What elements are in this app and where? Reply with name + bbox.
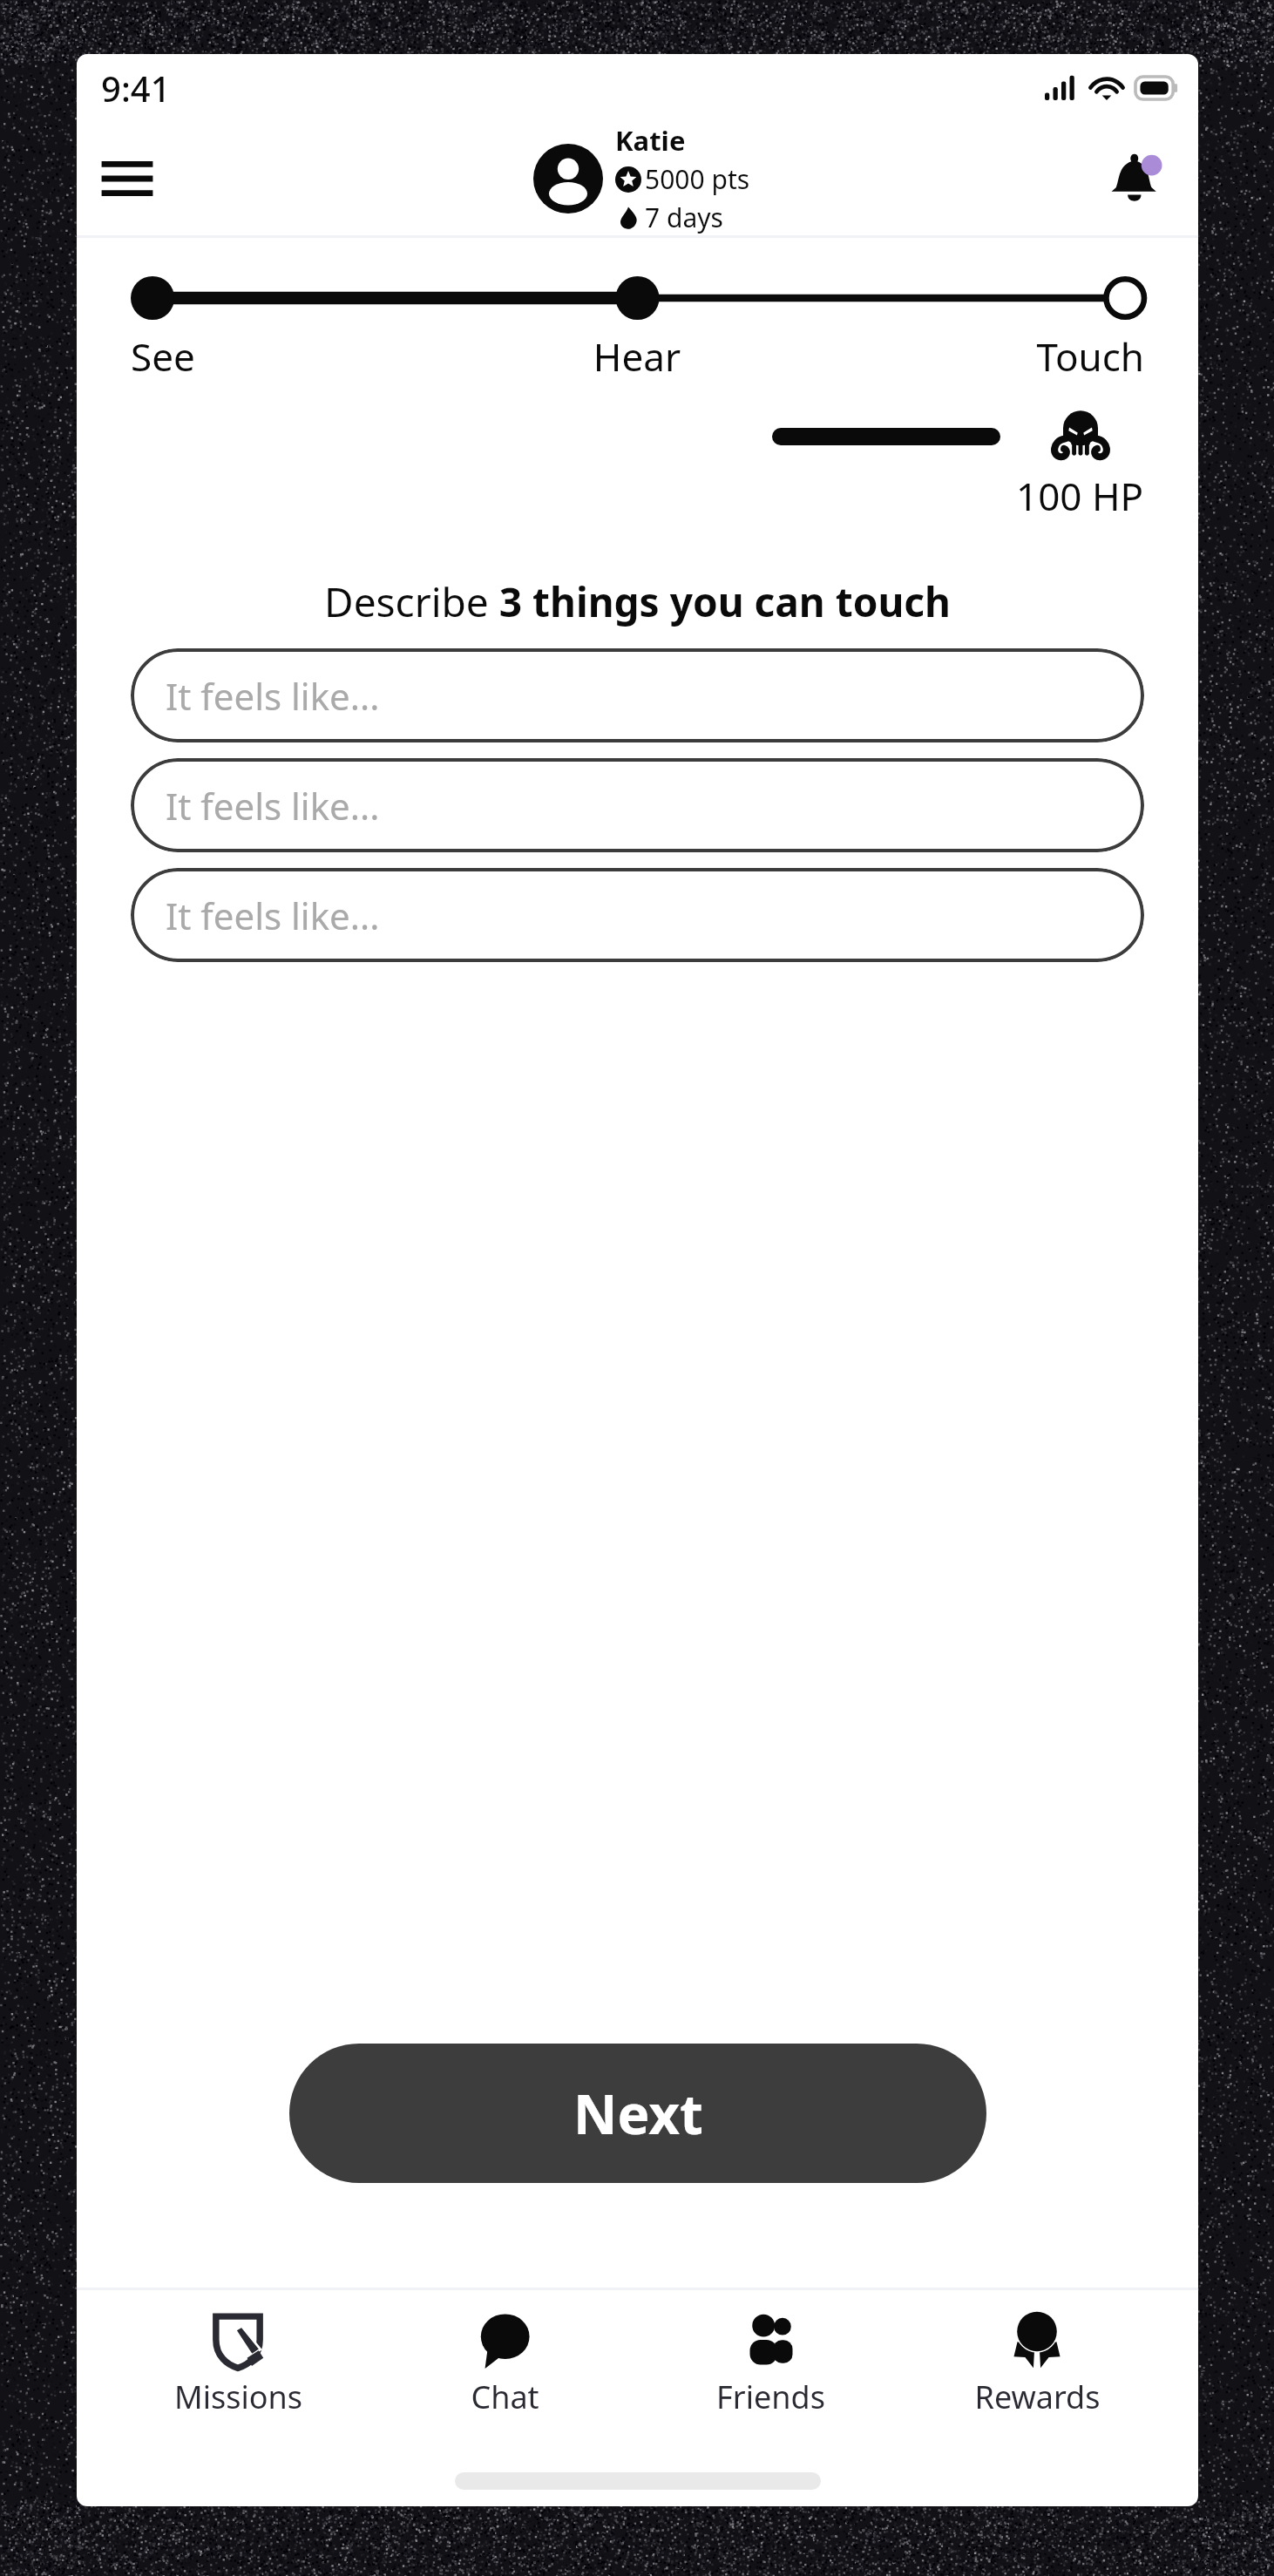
staticText: It feels like... [166,781,380,830]
staticText: It feels like... [166,671,380,721]
staticText: 9:41 [101,64,171,112]
button[interactable]: It feels like... [131,758,1144,852]
button[interactable]: See [131,330,468,383]
button[interactable]: It feels like... [131,648,1144,742]
button[interactable]: Touch [806,330,1144,383]
button[interactable]: Notifications [1094,135,1181,222]
staticText: Chat [471,2376,539,2418]
staticText: Next [573,2077,703,2150]
staticText: Katie [615,122,686,159]
staticText: Rewards [974,2376,1101,2418]
staticText: Friends [716,2376,825,2418]
button[interactable]: Hear [468,330,806,383]
staticText: 5000 pts [645,161,750,197]
button[interactable]: Missions [133,2311,342,2418]
button[interactable]: Rewards [932,2311,1142,2418]
button[interactable]: Next [289,2044,986,2183]
button[interactable]: Chat [400,2311,609,2418]
button[interactable]: It feels like... [131,868,1144,962]
button[interactable]: Katie [533,122,750,235]
staticText: It feels like... [166,891,380,940]
staticText: 7 days [645,200,723,235]
staticText: Describe 3 things you can touch [77,574,1198,629]
button[interactable]: Friends [666,2311,875,2418]
button[interactable]: Menu [84,135,171,222]
staticText: Missions [174,2376,302,2418]
staticText: 100 HP [1016,470,1144,522]
